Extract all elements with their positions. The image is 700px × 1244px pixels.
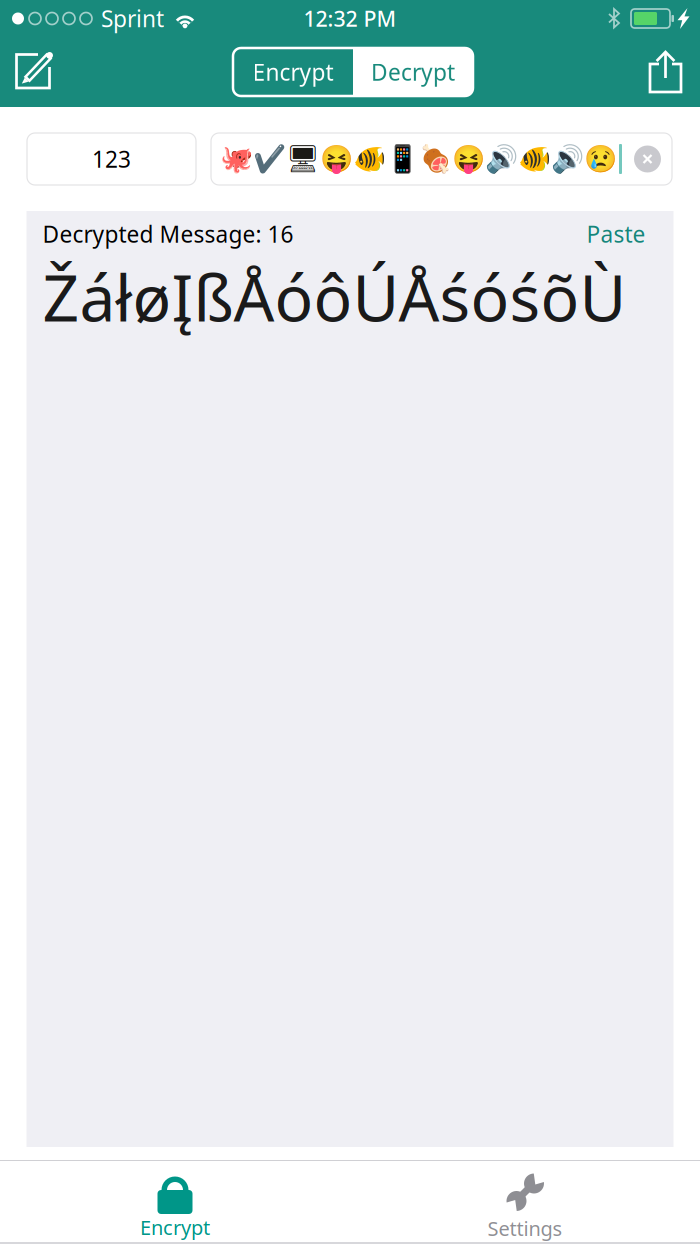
button[interactable]: Share: [648, 49, 684, 95]
staticText: Paste: [586, 219, 645, 249]
button[interactable]: Encrypt: [0, 1161, 350, 1242]
staticText: Sprint: [101, 3, 164, 33]
button[interactable]: Encrypt: [233, 48, 353, 96]
button[interactable]: Compose: [14, 50, 58, 94]
staticText: Settings: [487, 1215, 562, 1242]
button[interactable]: Paste: [586, 219, 645, 249]
staticText: Encrypt: [252, 57, 333, 87]
staticText: Encrypt: [140, 1214, 210, 1241]
staticText: ŽáłøĮßÅóôÚÅśóśõÙ: [42, 254, 626, 339]
staticText: 123: [92, 144, 131, 174]
button[interactable]: Settings: [350, 1161, 700, 1242]
staticText: 12:32 PM: [303, 4, 396, 33]
button[interactable]: Decrypt: [353, 48, 473, 96]
staticText: Decrypted Message: 16: [42, 219, 293, 249]
staticText: 🐙✔️🖥😝🐠📱🍖😝🔊🐠🔊😢: [220, 144, 617, 174]
button[interactable]: Clear text: [634, 145, 661, 172]
staticText: Decrypt: [371, 57, 455, 87]
